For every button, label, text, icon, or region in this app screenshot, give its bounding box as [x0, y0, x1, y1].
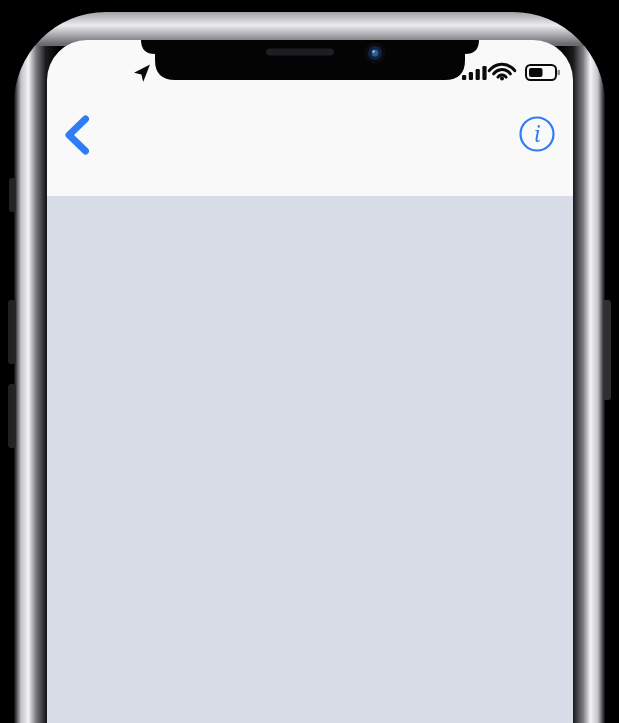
button[interactable]: Back	[47, 102, 105, 162]
button[interactable]: Info	[508, 106, 566, 162]
staticText: i	[534, 120, 541, 149]
